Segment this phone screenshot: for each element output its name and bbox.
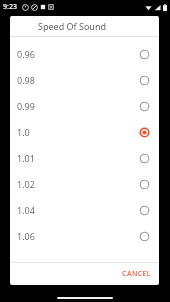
- staticText: 1.06: [17, 230, 139, 242]
- button[interactable]: CANCEL: [114, 265, 159, 283]
- other: Not selected: [139, 101, 150, 112]
- button[interactable]: 1.02: [10, 171, 159, 197]
- other: Not selected: [139, 75, 150, 86]
- other: Not selected: [139, 205, 150, 216]
- button[interactable]: 0.96: [10, 41, 159, 67]
- staticText: CANCEL: [122, 269, 151, 279]
- staticText: 1.02: [17, 178, 139, 190]
- button[interactable]: 0.99: [10, 93, 159, 119]
- button[interactable]: 1.06: [10, 223, 159, 249]
- other: Not selected: [139, 231, 150, 242]
- other: Selected: [139, 127, 150, 138]
- staticText: 0.98: [17, 74, 139, 86]
- other: Not selected: [139, 153, 150, 164]
- button[interactable]: Home gesture bar: [57, 297, 113, 299]
- staticText: 1.04: [17, 204, 139, 216]
- staticText: 1.01: [17, 152, 139, 164]
- button[interactable]: 1.0: [10, 119, 159, 145]
- button[interactable]: 1.04: [10, 197, 159, 223]
- staticText: 0.96: [17, 48, 139, 60]
- staticText: 9:23: [3, 2, 17, 12]
- other: Not selected: [139, 179, 150, 190]
- button[interactable]: 1.01: [10, 145, 159, 171]
- other: Not selected: [139, 49, 150, 60]
- staticText: 0.99: [17, 100, 139, 112]
- staticText: Speed Of Sound: [38, 20, 107, 32]
- button[interactable]: 0.98: [10, 67, 159, 93]
- staticText: 1.0: [17, 126, 139, 138]
